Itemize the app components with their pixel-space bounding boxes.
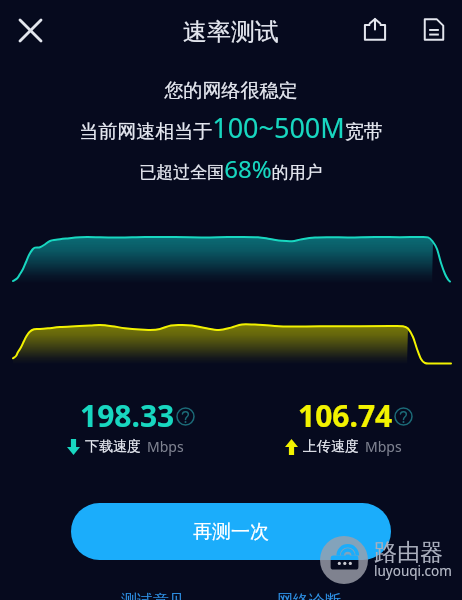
staticText: 当前网速相当于100~500M宽带 (0, 109, 462, 146)
button[interactable]: 测试意见 (105, 583, 201, 600)
button[interactable]: Help (393, 406, 413, 426)
button[interactable]: Close (12, 12, 48, 48)
staticText: 已超过全国68%的用户 (0, 152, 462, 185)
staticText: Mbps (365, 437, 402, 456)
staticText: 下载速度 (85, 438, 141, 456)
button[interactable]: Help (175, 406, 195, 426)
button[interactable]: 再测一次 (71, 503, 391, 560)
staticText: 上传速度 (303, 438, 359, 456)
staticText: 106.74 (298, 395, 393, 436)
button[interactable]: Share (355, 9, 395, 49)
staticText: 198.33 (80, 395, 175, 436)
staticText: 再测一次 (193, 520, 269, 544)
staticText: luyouqi.com (374, 562, 452, 580)
staticText: 网络诊断 (277, 591, 341, 600)
button[interactable]: 网络诊断 (261, 583, 357, 600)
staticText: 路由器 (374, 538, 443, 567)
button[interactable]: Report (414, 9, 454, 49)
staticText: 您的网络很稳定 (0, 79, 462, 103)
staticText: Mbps (147, 437, 184, 456)
staticText: 测试意见 (121, 591, 185, 600)
staticText: 速率测试 (183, 17, 279, 47)
